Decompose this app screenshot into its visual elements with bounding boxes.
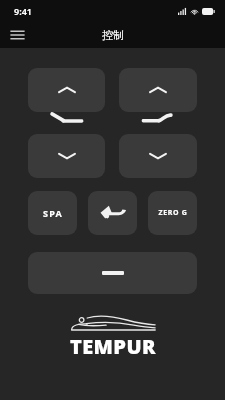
button[interactable]: Lower feet [119, 134, 197, 178]
button[interactable]: ZERO G [148, 191, 197, 235]
button[interactable]: SPA [28, 191, 77, 235]
staticText: TEMPUR [70, 333, 156, 360]
button[interactable]: Menu [4, 22, 30, 48]
button[interactable]: Raise feet [119, 68, 197, 112]
button[interactable]: Lower head [28, 134, 105, 178]
button[interactable]: Recline preset [88, 191, 137, 235]
staticText: ZERO G [158, 208, 188, 218]
staticText: 控制 [102, 28, 124, 42]
button[interactable]: Raise head [28, 68, 105, 112]
button[interactable]: Flat position [28, 252, 197, 294]
staticText: 9:41 [14, 5, 32, 17]
staticText: SPA [43, 207, 63, 219]
